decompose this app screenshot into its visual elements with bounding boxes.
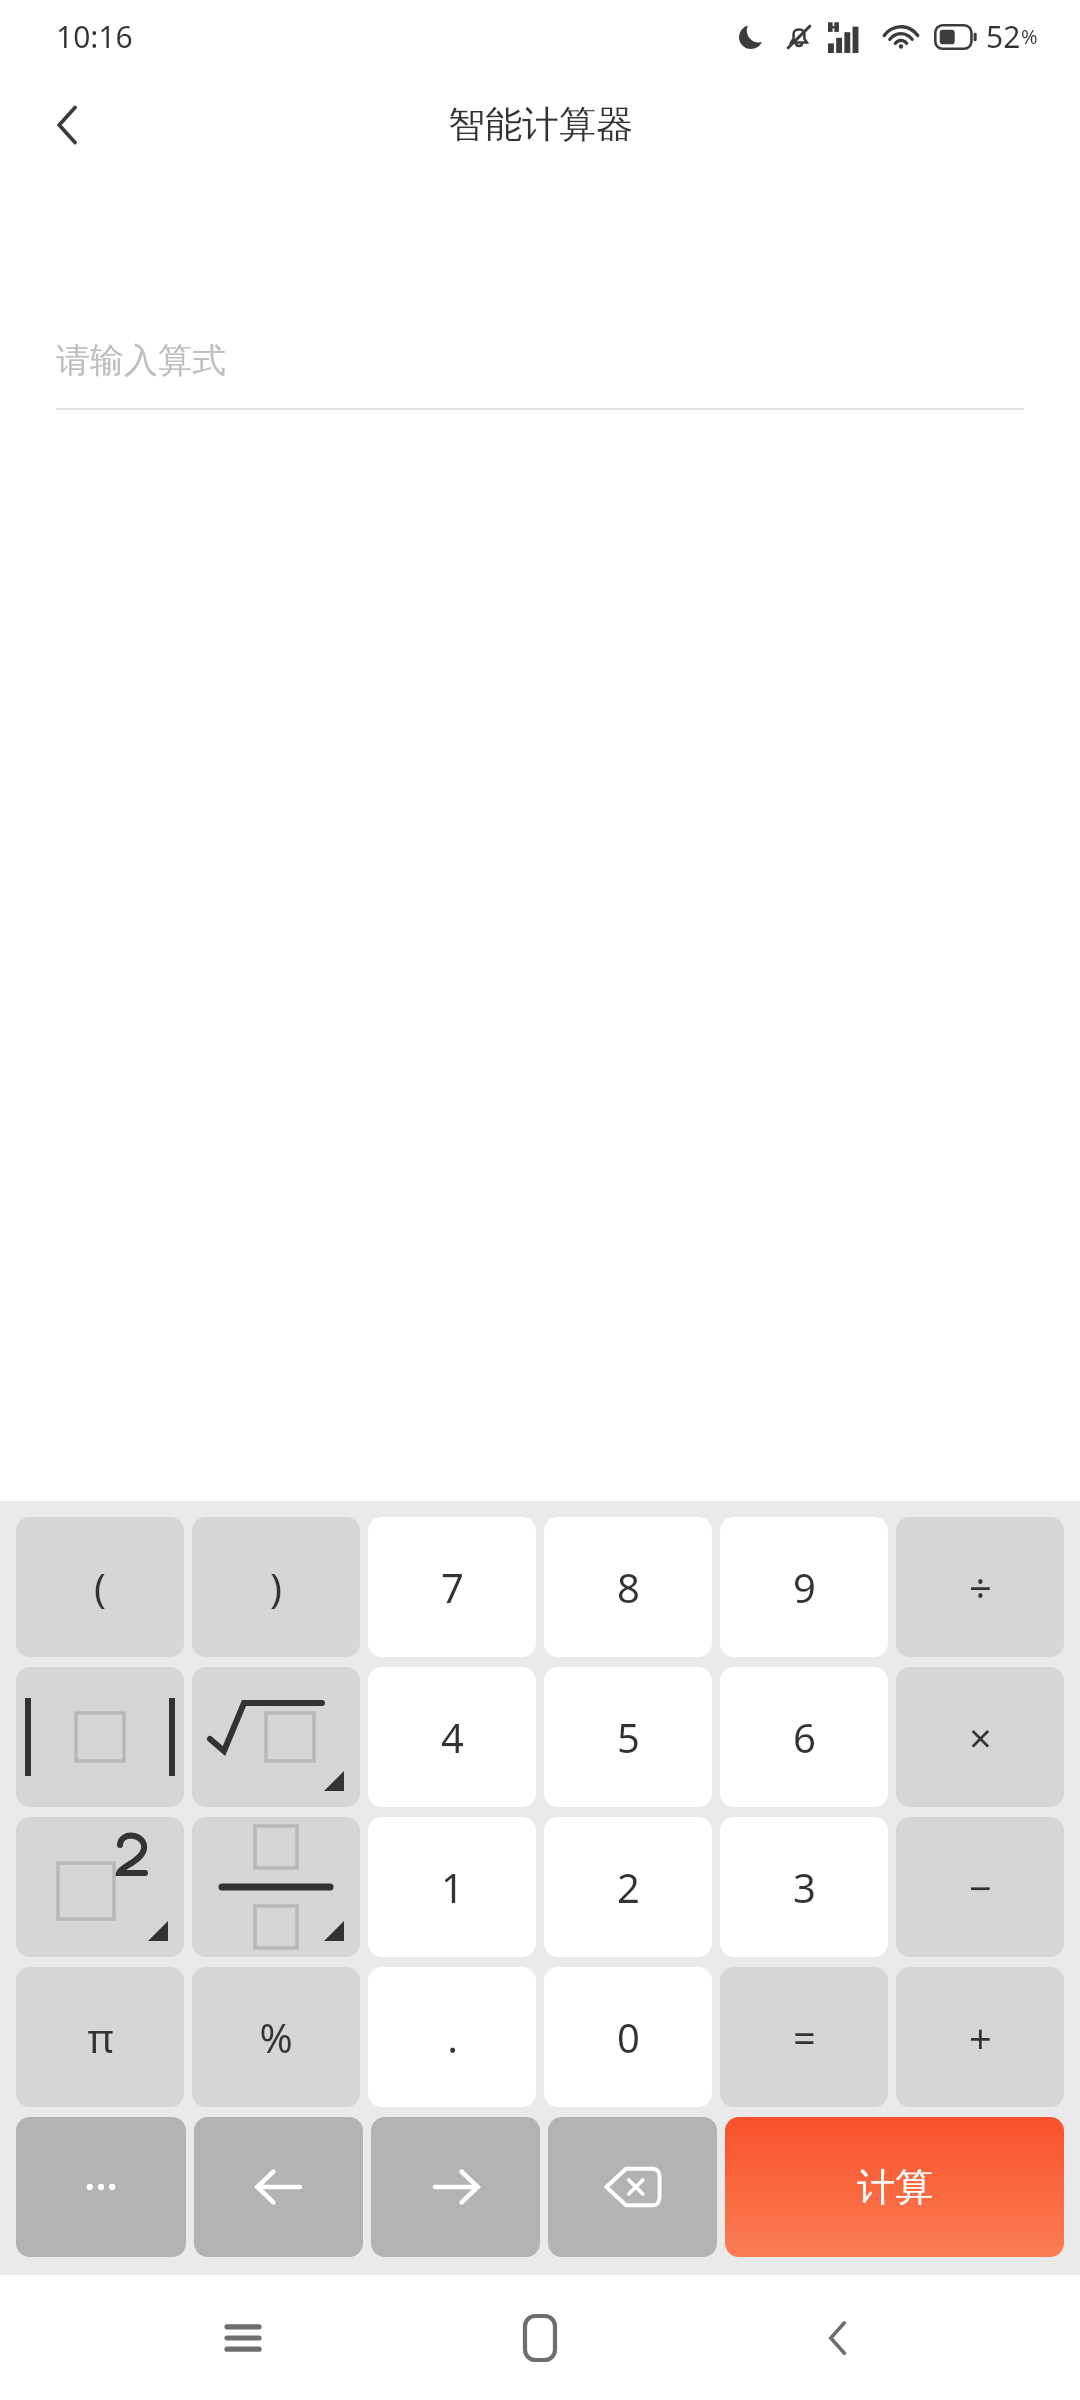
staticText: 6	[793, 1710, 816, 1764]
button[interactable]: 返回	[783, 2283, 893, 2393]
button[interactable]: 5	[544, 1667, 712, 1807]
staticText: 请输入算式	[56, 339, 226, 382]
button[interactable]: 1	[368, 1817, 536, 1957]
staticText: 4	[441, 1710, 464, 1764]
staticText: 3	[793, 1860, 816, 1914]
staticText: )	[270, 1560, 282, 1614]
button[interactable]: 请输入算式	[56, 312, 1024, 408]
button[interactable]: ×	[896, 1667, 1064, 1807]
button[interactable]: 计算	[725, 2117, 1064, 2257]
staticText: %	[259, 2010, 293, 2064]
staticText: π	[87, 2010, 114, 2064]
button[interactable]: 右移	[371, 2117, 540, 2257]
staticText: .	[447, 2010, 458, 2064]
staticText: 10:16	[56, 16, 133, 57]
button[interactable]: %	[192, 1967, 360, 2107]
staticText: 5	[617, 1710, 640, 1764]
button[interactable]: 2	[544, 1817, 712, 1957]
staticText: 52	[986, 16, 1021, 57]
button[interactable]: .	[368, 1967, 536, 2107]
button[interactable]: 3	[720, 1817, 888, 1957]
button[interactable]: 删除	[548, 2117, 717, 2257]
button[interactable]: 更多	[16, 2117, 186, 2257]
staticText: 计算	[857, 2163, 933, 2211]
button[interactable]: 7	[368, 1517, 536, 1657]
staticText: (	[94, 1560, 106, 1614]
staticText: +	[969, 2010, 992, 2064]
staticText: 2	[617, 1860, 640, 1914]
staticText: 智能计算器	[448, 101, 633, 148]
button[interactable]: +	[896, 1967, 1064, 2107]
button[interactable]: 0	[544, 1967, 712, 2107]
button[interactable]: (	[16, 1517, 184, 1657]
staticText: 7	[441, 1560, 464, 1614]
button[interactable]: SQRT	[192, 1667, 360, 1807]
button[interactable]: =	[720, 1967, 888, 2107]
staticText: 9	[793, 1560, 816, 1614]
staticText: 1	[441, 1860, 464, 1914]
button[interactable]: 4	[368, 1667, 536, 1807]
staticText: 8	[617, 1560, 640, 1614]
staticText: 0	[617, 2010, 640, 2064]
button[interactable]: 主页	[485, 2283, 595, 2393]
button[interactable]: )	[192, 1517, 360, 1657]
button[interactable]: ÷	[896, 1517, 1064, 1657]
staticText: =	[793, 2010, 816, 2064]
staticText: ÷	[969, 1560, 992, 1614]
staticText: −	[969, 1860, 992, 1914]
button[interactable]: −	[896, 1817, 1064, 1957]
button[interactable]: 最近任务	[188, 2283, 298, 2393]
button[interactable]: ABS	[16, 1667, 184, 1807]
button[interactable]: π	[16, 1967, 184, 2107]
button[interactable]: 8	[544, 1517, 712, 1657]
button[interactable]: 返回	[26, 83, 110, 167]
button[interactable]: 6	[720, 1667, 888, 1807]
button[interactable]: 左移	[194, 2117, 363, 2257]
button[interactable]: SQUARE	[16, 1817, 184, 1957]
staticText: ×	[969, 1710, 992, 1764]
button[interactable]: FRAC	[192, 1817, 360, 1957]
button[interactable]: 9	[720, 1517, 888, 1657]
staticText: %	[1021, 23, 1038, 50]
